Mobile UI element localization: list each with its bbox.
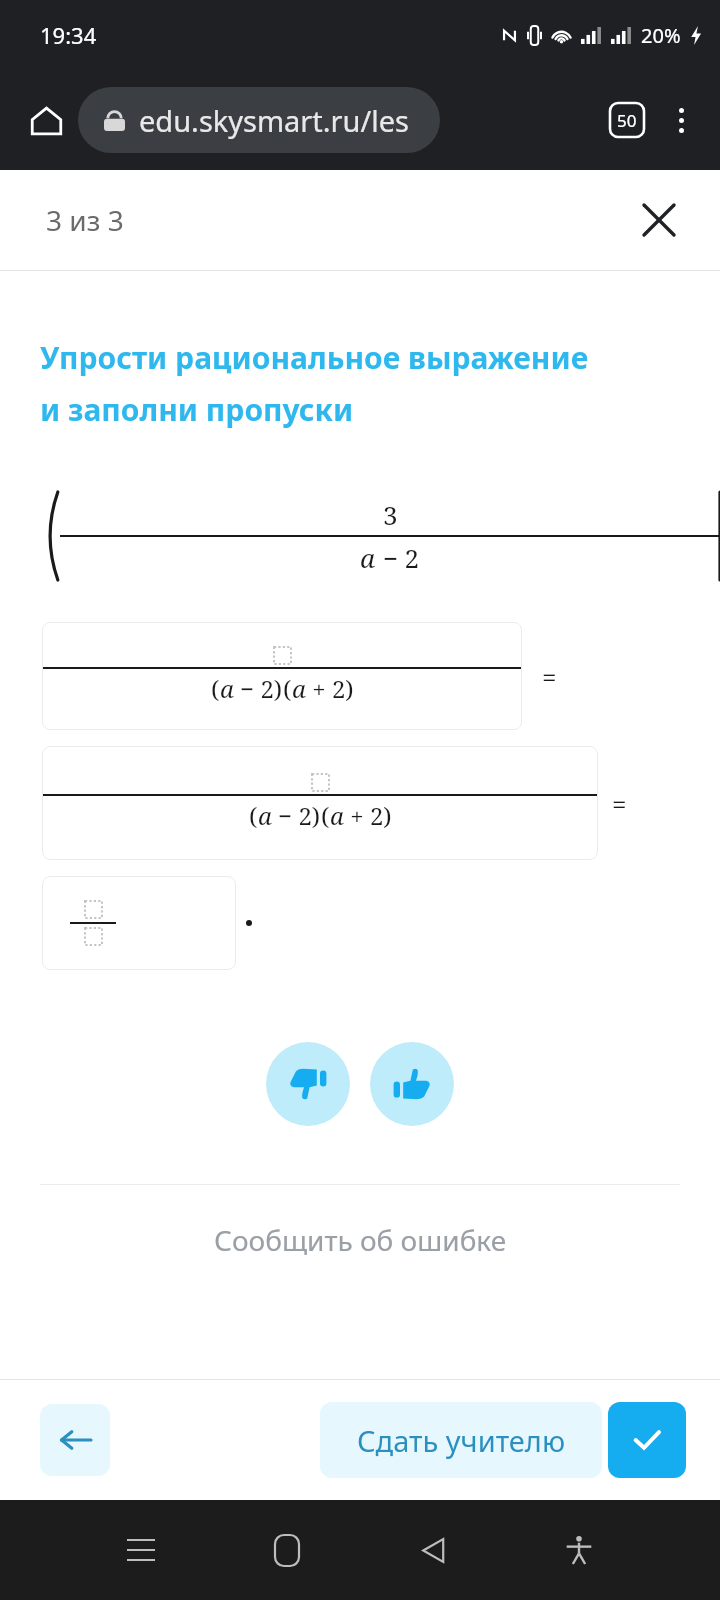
- button[interactable]: [42, 876, 236, 970]
- staticText: a: [360, 540, 376, 575]
- staticText: a: [330, 799, 344, 832]
- button[interactable]: Accessibility: [549, 1520, 609, 1580]
- staticText: + 2): [344, 799, 392, 832]
- staticText: (: [249, 799, 258, 832]
- staticText: (: [211, 672, 220, 705]
- button[interactable]: (: [42, 746, 598, 860]
- button[interactable]: Сдать учителю: [320, 1402, 602, 1478]
- staticText: − 2): [234, 672, 283, 705]
- staticText: + 2): [306, 672, 354, 705]
- button[interactable]: Check answer: [608, 1402, 686, 1478]
- button[interactable]: Сообщить об ошибке: [0, 1221, 720, 1259]
- staticText: 20%: [641, 22, 681, 49]
- staticText: − 2): [272, 799, 321, 832]
- staticText: a: [292, 672, 306, 705]
- staticText: Сдать учителю: [357, 1421, 566, 1460]
- staticText: − 2: [376, 540, 420, 575]
- button[interactable]: edu.skysmart.ru/les: [78, 87, 440, 153]
- staticText: a: [258, 799, 272, 832]
- staticText: =: [542, 659, 557, 694]
- staticText: edu.skysmart.ru/les: [139, 101, 409, 140]
- button[interactable]: (: [42, 622, 522, 730]
- button[interactable]: Tabs: [600, 93, 654, 147]
- button[interactable]: Like: [370, 1042, 454, 1126]
- staticText: (: [321, 799, 330, 832]
- staticText: =: [612, 786, 627, 821]
- staticText: 19:34: [40, 20, 97, 50]
- button[interactable]: Recents: [111, 1520, 171, 1580]
- staticText: 3: [383, 497, 398, 532]
- button[interactable]: Close: [632, 193, 686, 247]
- button[interactable]: Home: [257, 1520, 317, 1580]
- staticText: Упрости рациональное выражение и заполни…: [40, 337, 589, 430]
- button[interactable]: Previous: [40, 1404, 110, 1476]
- staticText: (: [283, 672, 292, 705]
- staticText: a: [220, 672, 234, 705]
- button[interactable]: Dislike: [266, 1042, 350, 1126]
- staticText: 50: [617, 109, 637, 132]
- staticText: Сообщить об ошибке: [214, 1221, 507, 1259]
- button[interactable]: Home: [20, 94, 72, 146]
- button[interactable]: Back: [403, 1520, 463, 1580]
- staticText: 3 из 3: [46, 201, 124, 239]
- button[interactable]: More options: [654, 93, 708, 147]
